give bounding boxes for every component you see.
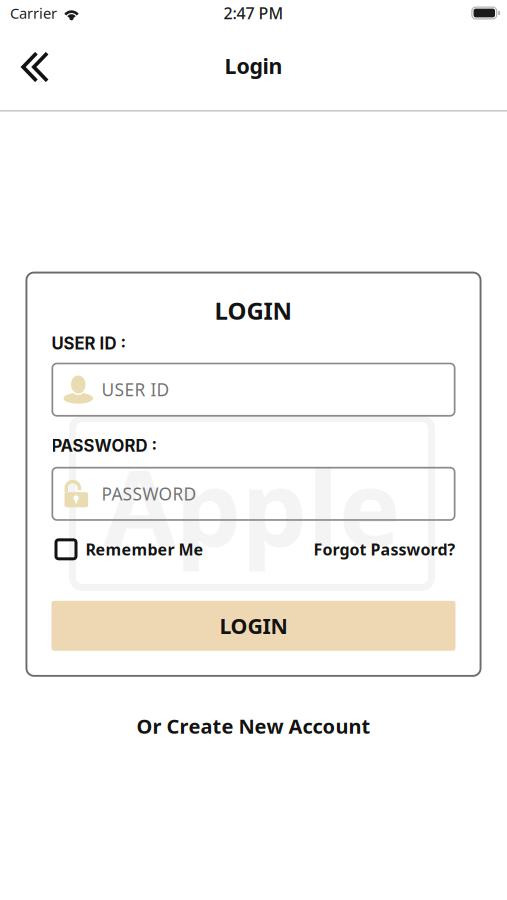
staticText: Apple xyxy=(103,437,400,575)
button[interactable]: PASSWORD xyxy=(51,467,455,521)
staticText: Or Create New Account xyxy=(136,713,370,739)
staticText: PASSWORD xyxy=(101,482,196,505)
staticText: PASSWORD : xyxy=(51,436,157,456)
staticText: Carrier xyxy=(10,3,57,23)
staticText: Forgot Password? xyxy=(313,539,455,560)
staticText: USER ID xyxy=(101,378,169,401)
staticText: Login xyxy=(224,52,282,80)
button[interactable]: Back xyxy=(0,26,66,110)
staticText: USER ID : xyxy=(51,333,126,354)
staticText: LOGIN xyxy=(219,612,287,640)
staticText: LOGIN xyxy=(214,295,292,326)
button[interactable]: Remember Me xyxy=(51,538,203,560)
button[interactable]: Or Create New Account xyxy=(136,713,370,739)
button[interactable]: USER ID xyxy=(51,363,455,417)
button[interactable]: Forgot Password? xyxy=(313,539,455,560)
staticText: 2:47 PM xyxy=(223,2,283,24)
button[interactable]: LOGIN xyxy=(51,601,455,651)
staticText: Remember Me xyxy=(85,539,203,560)
